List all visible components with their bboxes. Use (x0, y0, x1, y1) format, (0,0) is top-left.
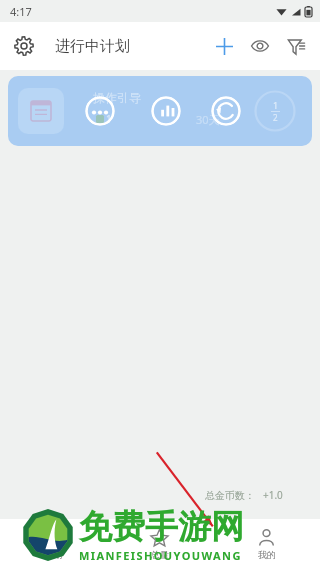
button[interactable]: 我的 (213, 519, 320, 569)
button[interactable]: Visibility (242, 28, 278, 64)
button[interactable]: Filter (278, 28, 314, 64)
button[interactable]: Settings (6, 28, 42, 64)
button[interactable]: Add (206, 28, 242, 64)
button[interactable]: 总量 (106, 519, 213, 569)
button[interactable]: 计划 (0, 519, 106, 569)
staticText: 免费手游网 (79, 506, 244, 548)
staticText: 4:17 (10, 4, 32, 19)
staticText: 总金币数： (205, 489, 255, 502)
staticText: 总量 (151, 549, 169, 560)
button[interactable]: Reset (211, 96, 241, 126)
staticText: 1 (273, 99, 279, 111)
staticText: 2 (273, 112, 278, 123)
button[interactable]: More (8, 76, 312, 146)
staticText: MIANFEISHOUYOUWANG (79, 548, 242, 563)
staticText: 30天 (196, 112, 220, 127)
staticText: +1.0 (263, 488, 283, 502)
staticText: 1 (106, 112, 112, 126)
staticText: 进行中计划 (55, 37, 130, 56)
staticText: 我的 (258, 549, 276, 560)
button[interactable]: Statistics (151, 96, 181, 126)
staticText: 操作引导 (93, 90, 141, 105)
staticText: 计划 (44, 549, 62, 560)
button[interactable]: More (85, 96, 115, 126)
